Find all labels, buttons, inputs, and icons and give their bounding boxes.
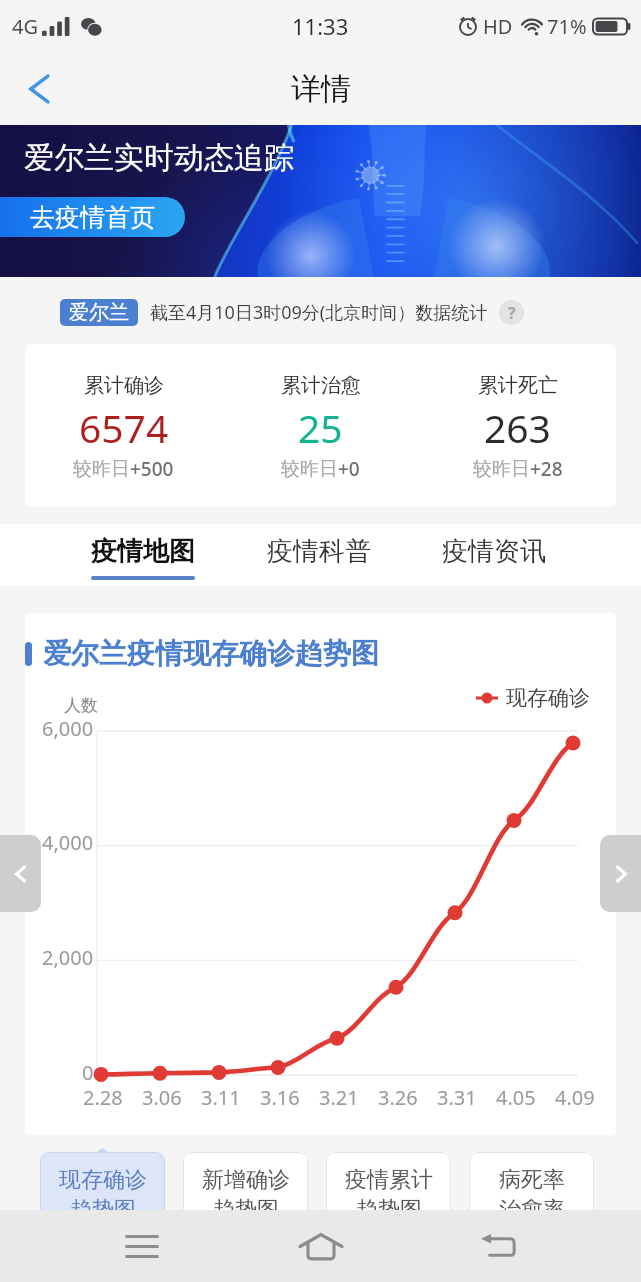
staticText: HD [483, 13, 513, 40]
staticText: 263 [484, 401, 551, 454]
staticText: 较昨日 [281, 457, 338, 481]
staticText: 爱尔兰实时动态追踪 [24, 139, 294, 177]
button[interactable]: 去疫情首页 [0, 197, 185, 237]
staticText: 现存确诊 趋势图 [59, 1166, 147, 1223]
staticText: 累计确诊 [84, 373, 164, 398]
staticText: 疫情资讯 [442, 535, 546, 568]
staticText: 累计死亡 [478, 373, 558, 398]
staticText: 人数 [64, 695, 98, 716]
button[interactable]: 疫情累计 趋势图 [326, 1152, 451, 1236]
button[interactable]: 爱尔兰实时动态追踪 [0, 125, 641, 277]
button[interactable]: Next chart [600, 835, 641, 912]
staticText: 25 [298, 401, 343, 454]
staticText: 病死率 治愈率 [499, 1166, 565, 1223]
staticText: 6574 [79, 401, 169, 454]
staticText: 累计治愈 [281, 373, 361, 398]
staticText: 新增确诊 趋势图 [202, 1166, 290, 1223]
staticText: 爱尔兰 [69, 300, 129, 325]
staticText: 疫情累计 趋势图 [345, 1166, 433, 1223]
staticText: 去疫情首页 [30, 202, 155, 233]
button[interactable]: Help [499, 300, 524, 325]
button[interactable]: 病死率 治愈率 [469, 1152, 594, 1236]
staticText: 现存确诊 [506, 685, 590, 711]
staticText: +500 [130, 456, 174, 482]
staticText: +0 [338, 456, 360, 482]
staticText: 疫情科普 [267, 535, 371, 568]
staticText: 详情 [291, 70, 351, 108]
staticText: 4G [12, 13, 38, 40]
button[interactable]: 新增确诊 趋势图 [183, 1152, 308, 1236]
staticText: 爱尔兰疫情现存确诊趋势图 [43, 636, 379, 671]
button[interactable]: 疫情科普 [231, 524, 407, 586]
button[interactable]: Previous chart [0, 835, 41, 912]
staticText: 71% [547, 13, 587, 40]
staticText: 截至4月10日3时09分(北京时间）数据统计 [150, 300, 488, 325]
button[interactable]: 现存确诊 趋势图 [40, 1152, 165, 1236]
button[interactable]: 疫情地图 [55, 524, 231, 586]
staticText: 疫情地图 [91, 535, 195, 568]
staticText: 较昨日 [73, 457, 130, 481]
staticText: 11:33 [292, 11, 349, 41]
button[interactable]: Back [463, 1210, 535, 1282]
button[interactable]: Back [8, 58, 70, 120]
button[interactable]: Menu [106, 1210, 178, 1282]
staticText: ? [508, 302, 516, 324]
staticText: +28 [530, 456, 563, 482]
staticText: 较昨日 [473, 457, 530, 481]
button[interactable]: 疫情资讯 [406, 524, 582, 586]
button[interactable]: Home [285, 1210, 357, 1282]
